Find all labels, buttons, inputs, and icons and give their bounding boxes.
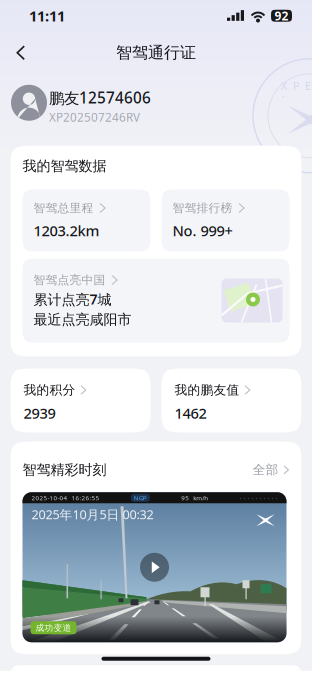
staticText: XP202507246RV bbox=[49, 110, 140, 125]
staticText: 我的积分 bbox=[23, 382, 75, 398]
staticText: 最近点亮咸阳市 bbox=[33, 311, 131, 328]
staticText: 95 km/h bbox=[181, 494, 208, 502]
button[interactable]: 全部 bbox=[252, 462, 289, 477]
staticText: 成功变道 bbox=[35, 623, 71, 633]
staticText: 智驾总里程 bbox=[33, 201, 93, 215]
staticText: NGP bbox=[134, 494, 147, 502]
staticText: X P E N G bbox=[281, 79, 312, 93]
staticText: 累计点亮7城 bbox=[33, 290, 111, 308]
button[interactable]: Back bbox=[0, 36, 42, 70]
button[interactable]: 我的积分 bbox=[10, 368, 150, 432]
staticText: 我的鹏友值 bbox=[174, 382, 239, 398]
staticText: 1462 bbox=[174, 404, 206, 423]
button[interactable]: 智驾总里程 bbox=[22, 189, 150, 251]
button[interactable]: 我的鹏友值 bbox=[161, 368, 301, 432]
staticText: 2025-10-04 16:26:55 bbox=[31, 494, 99, 502]
staticText: 智驾排行榜 bbox=[172, 201, 232, 215]
staticText: · · · · · · · · · · bbox=[239, 494, 277, 502]
staticText: 92 bbox=[274, 8, 288, 23]
staticText: 鹏友12574606 bbox=[49, 88, 151, 107]
staticText: 智驾精彩时刻 bbox=[22, 461, 106, 478]
staticText: 2939 bbox=[23, 404, 55, 423]
staticText: 2025年10月5日 00:32 bbox=[31, 506, 153, 523]
staticText: 全部 bbox=[252, 462, 278, 477]
staticText: No. 999+ bbox=[172, 221, 232, 240]
staticText: 智驾点亮中国 bbox=[33, 273, 105, 287]
staticText: 11:11 bbox=[29, 6, 65, 25]
staticText: 智驾通行证 bbox=[116, 43, 196, 62]
staticText: 我的智驾数据 bbox=[22, 158, 106, 174]
button[interactable]: 智驾排行榜 bbox=[161, 189, 289, 251]
staticText: 1203.2km bbox=[33, 221, 99, 240]
button[interactable]: 智驾点亮中国 bbox=[22, 258, 289, 342]
